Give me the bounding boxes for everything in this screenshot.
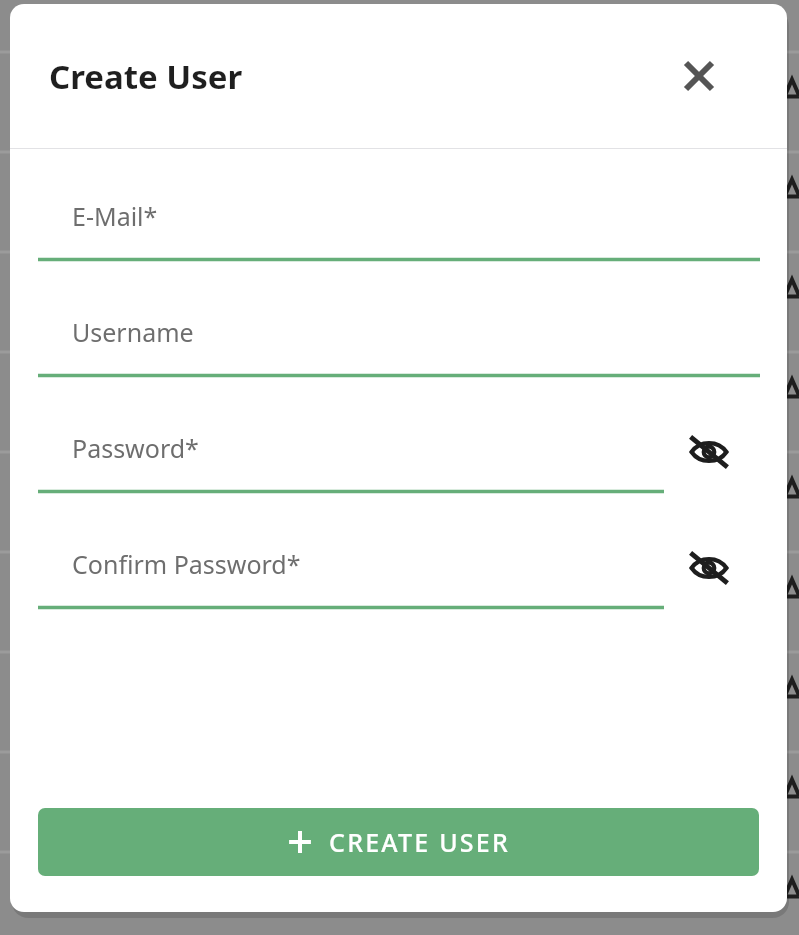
button[interactable]: Toggle password visibility (686, 545, 732, 591)
staticText: Username (72, 315, 194, 349)
button[interactable]: Username (10, 311, 787, 377)
button[interactable]: Toggle password visibility (686, 429, 732, 475)
button[interactable]: E-Mail* (10, 195, 787, 261)
staticText: Password* (72, 431, 199, 465)
staticText: E-Mail* (72, 199, 158, 233)
staticText: CREATE USER (329, 825, 510, 859)
button[interactable]: Password* (10, 427, 787, 493)
staticText: Create User (49, 54, 243, 99)
button[interactable]: Confirm Password* (10, 543, 787, 609)
button[interactable]: CREATE USER (38, 808, 759, 876)
staticText: Confirm Password* (72, 547, 301, 581)
button[interactable]: Close (677, 54, 721, 98)
